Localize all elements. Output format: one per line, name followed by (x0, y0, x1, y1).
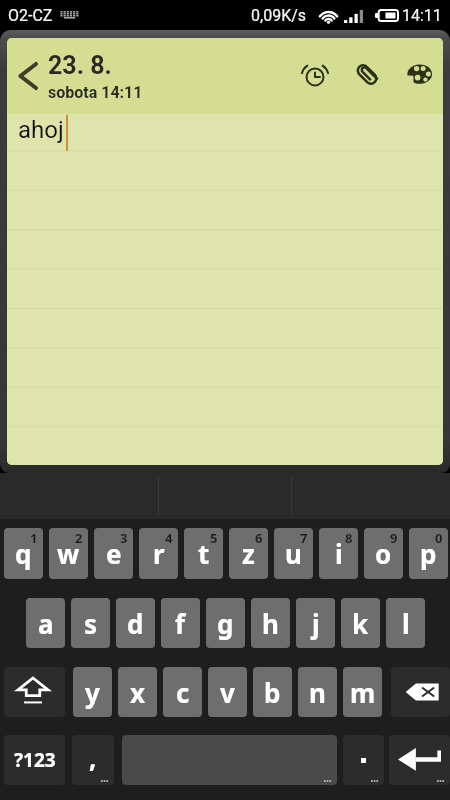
staticText: 0 (435, 529, 443, 547)
staticText: 2 (75, 529, 83, 547)
button[interactable]: z (229, 528, 268, 579)
staticText: z (242, 536, 255, 571)
staticText: v (220, 675, 235, 710)
button[interactable]: Shift (4, 667, 65, 717)
button[interactable]: g (206, 598, 245, 648)
button[interactable]: h (251, 598, 290, 648)
staticText: 23. 8. (48, 51, 112, 80)
staticText: h (262, 606, 279, 641)
staticText: 14:11 (402, 6, 442, 25)
button[interactable]: Attach (339, 38, 391, 114)
staticText: s (84, 606, 98, 641)
button[interactable]: v (208, 667, 247, 717)
staticText: ?123 (14, 747, 56, 773)
button[interactable]: d (116, 598, 155, 648)
button[interactable]: t (184, 528, 223, 579)
button[interactable]: a (26, 598, 65, 648)
button[interactable]: j (296, 598, 335, 648)
button[interactable]: Enter (389, 735, 450, 785)
button[interactable]: x (118, 667, 157, 717)
staticText: 0,09K/s (251, 6, 307, 25)
staticText: x (130, 675, 146, 710)
button[interactable]: e (94, 528, 133, 579)
button[interactable]: i (319, 528, 358, 579)
staticText: f (175, 606, 186, 641)
button[interactable] (343, 735, 384, 785)
button[interactable]: q (4, 528, 43, 579)
staticText: 3 (120, 529, 128, 547)
button[interactable]: k (341, 598, 380, 648)
staticText: 6 (255, 529, 263, 547)
button[interactable]: o (364, 528, 403, 579)
staticText: l (402, 606, 410, 641)
staticText: d (127, 606, 144, 641)
staticText: a (38, 606, 54, 641)
staticText: j (312, 606, 320, 641)
staticText: q (15, 536, 32, 571)
button[interactable]: r (139, 528, 178, 579)
staticText: i (335, 536, 343, 571)
button[interactable]: w (49, 528, 88, 579)
button[interactable]: f (161, 598, 200, 648)
staticText: w (57, 536, 80, 571)
staticText: m (350, 675, 376, 710)
staticText: sobota 14:11 (48, 83, 143, 102)
button[interactable]: ?123 (4, 735, 65, 785)
staticText: b (264, 675, 281, 710)
staticText: k (352, 606, 369, 641)
staticText: r (153, 536, 165, 571)
staticText: 1 (30, 529, 38, 547)
staticText: O2-CZ (8, 6, 53, 25)
staticText: 9 (390, 529, 398, 547)
staticText: 8 (345, 529, 353, 547)
button[interactable]: n (298, 667, 337, 717)
button[interactable]: s (71, 598, 110, 648)
staticText: 5 (210, 529, 218, 547)
staticText: , (89, 740, 97, 775)
staticText: y (85, 675, 100, 710)
button[interactable]: y (73, 667, 112, 717)
staticText: 4 (165, 529, 173, 547)
staticText: e (106, 536, 122, 571)
staticText: n (309, 675, 326, 710)
staticText: ahoj (18, 116, 64, 144)
staticText: o (375, 536, 392, 571)
staticText: c (176, 675, 190, 710)
staticText: g (217, 606, 234, 641)
button[interactable]: Alarm (287, 38, 339, 114)
button[interactable]: b (253, 667, 292, 717)
button[interactable]: c (163, 667, 202, 717)
staticText: 7 (300, 529, 308, 547)
staticText: u (285, 536, 302, 571)
button[interactable]: Back (7, 38, 48, 114)
button[interactable]: m (343, 667, 382, 717)
button[interactable]: p (409, 528, 448, 579)
staticText: p (420, 536, 437, 571)
button[interactable]: Backspace (391, 667, 450, 717)
staticText: t (198, 536, 210, 571)
button[interactable]: l (386, 598, 425, 648)
button[interactable]: Color (391, 38, 443, 114)
button[interactable]: u (274, 528, 313, 579)
button[interactable]: , (72, 735, 114, 785)
